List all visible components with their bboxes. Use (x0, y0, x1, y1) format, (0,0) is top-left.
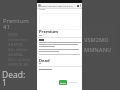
staticText: ALm aldow (8, 57, 30, 62)
button[interactable]: Site information (38, 4, 41, 7)
staticText: Premium (3, 17, 29, 25)
staticText: Dead: (2, 69, 26, 81)
button[interactable]: More options (79, 4, 82, 7)
staticText: Premium (39, 29, 59, 35)
staticText: VSM2MO (84, 36, 109, 43)
staticText: Dead (39, 58, 50, 64)
staticText: mmockrn (8, 37, 28, 42)
staticText: MMNANU (84, 46, 112, 53)
staticText: Send (60, 81, 66, 84)
staticText: ABMDA (8, 52, 23, 57)
staticText: www.onelines.edennote.org (41, 4, 73, 7)
staticText: MPRDR.IN (8, 62, 29, 67)
staticText: 1 (2, 77, 7, 89)
staticText: Ala aldow (8, 47, 28, 52)
staticText: ABMDA (8, 42, 23, 47)
staticText: 41 (3, 23, 10, 31)
button[interactable]: Send (59, 80, 67, 85)
staticText: MEM (8, 32, 18, 37)
button[interactable]: Tabs (76, 4, 79, 7)
